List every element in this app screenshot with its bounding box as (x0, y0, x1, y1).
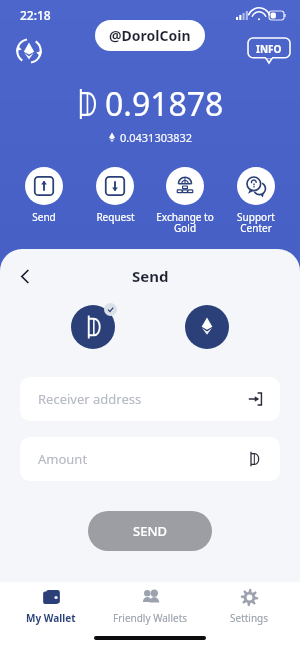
staticText: Request (96, 210, 135, 224)
button[interactable]: Info (248, 38, 290, 64)
staticText: Friendly Wallets (113, 611, 188, 625)
button[interactable]: Swap currency (10, 32, 48, 70)
staticText: @DorolCoin (109, 26, 191, 45)
staticText: SEND (133, 522, 167, 540)
button[interactable]: Ethereum (185, 305, 229, 349)
staticText: 22:18 (20, 7, 51, 23)
button[interactable]: Exchange to Gold (151, 167, 219, 235)
staticText: 0.0431303832 (120, 130, 193, 145)
button[interactable]: Settings (201, 584, 297, 629)
button[interactable]: Send (10, 167, 78, 224)
button[interactable]: Back (10, 263, 40, 289)
button[interactable]: Request (81, 167, 149, 224)
button[interactable]: Dorol coin selected (71, 305, 115, 349)
staticText: Send (132, 266, 169, 286)
staticText: Support Center (237, 210, 275, 235)
staticText: Receiver address (38, 390, 142, 408)
staticText: Exchange to Gold (156, 210, 214, 235)
button[interactable]: Amount (20, 437, 280, 481)
button[interactable]: Support Center (222, 167, 290, 235)
button[interactable]: SEND (88, 511, 212, 551)
staticText: My Wallet (26, 611, 76, 625)
staticText: Send (32, 210, 56, 224)
button[interactable]: @DorolCoin (95, 20, 205, 51)
button[interactable]: Friendly Wallets (102, 584, 198, 629)
staticText: INFO (256, 42, 282, 56)
button[interactable]: Receiver address (20, 377, 280, 421)
staticText: Settings (230, 611, 269, 625)
button[interactable]: My Wallet (3, 584, 99, 629)
staticText: 0.91878 (105, 82, 224, 126)
staticText: Amount (38, 450, 88, 468)
